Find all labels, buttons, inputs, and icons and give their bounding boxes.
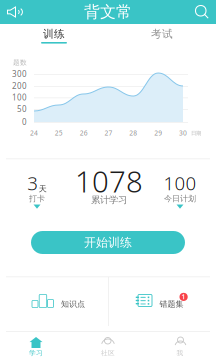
staticText: 26: [80, 129, 88, 137]
staticText: 天: [39, 184, 47, 194]
staticText: 0: [22, 116, 27, 127]
staticText: 30: [179, 129, 187, 137]
button[interactable]: 学习: [0, 0, 72, 360]
button[interactable]: 社区: [72, 0, 144, 360]
staticText: 背文常: [84, 2, 132, 22]
staticText: 200: [12, 80, 27, 91]
staticText: 日期: [191, 130, 201, 137]
staticText: 29: [154, 129, 162, 137]
staticText: 1078: [75, 161, 143, 200]
staticText: 25: [55, 129, 63, 137]
staticText: 100: [163, 171, 196, 195]
staticText: 知识点: [61, 299, 85, 309]
staticText: 考试: [151, 27, 173, 40]
button[interactable]: 知识点: [0, 0, 108, 331]
staticText: 24: [30, 129, 38, 137]
staticText: 28: [129, 129, 137, 137]
staticText: 300: [12, 68, 27, 79]
staticText: 今日计划: [164, 194, 196, 203]
staticText: 题数: [13, 58, 27, 67]
button[interactable]: 错题集: [108, 0, 216, 331]
staticText: 50: [17, 103, 27, 114]
staticText: 错题集: [159, 299, 183, 309]
button[interactable]: 我: [144, 0, 216, 360]
staticText: 1: [182, 292, 186, 301]
staticText: 100: [12, 92, 27, 103]
button[interactable]: Sound: [0, 0, 34, 24]
staticText: 训练: [43, 27, 65, 40]
staticText: 打卡: [29, 194, 45, 203]
staticText: 我: [176, 349, 183, 357]
button[interactable]: 训练: [0, 0, 108, 44]
staticText: 27: [104, 129, 112, 137]
button[interactable]: 考试: [108, 0, 216, 44]
staticText: 开始训练: [84, 235, 132, 250]
staticText: 3: [27, 171, 38, 195]
staticText: 累计学习: [91, 194, 127, 206]
button[interactable]: Search: [182, 0, 216, 24]
staticText: 学习: [29, 349, 43, 357]
button[interactable]: 开始训练: [31, 231, 185, 254]
staticText: 社区: [101, 349, 115, 357]
